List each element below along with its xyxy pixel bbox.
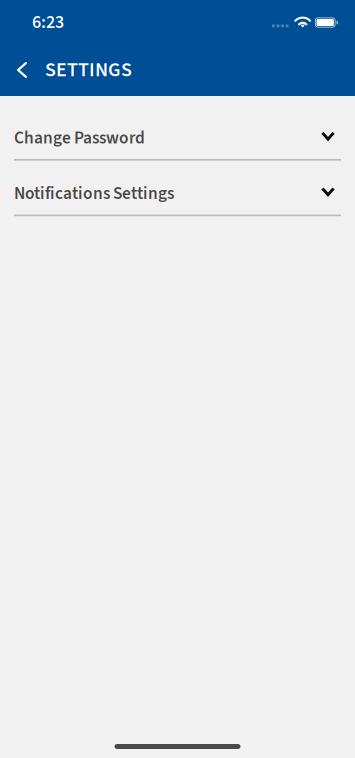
staticText: 6:23 bbox=[32, 10, 64, 35]
staticText: Notifications Settings bbox=[14, 181, 174, 206]
button[interactable]: Back bbox=[0, 46, 45, 94]
staticText: SETTINGS bbox=[45, 56, 132, 84]
button[interactable]: Change Password bbox=[0, 117, 355, 173]
button[interactable]: Notifications Settings bbox=[0, 173, 355, 228]
staticText: Change Password bbox=[14, 126, 145, 150]
